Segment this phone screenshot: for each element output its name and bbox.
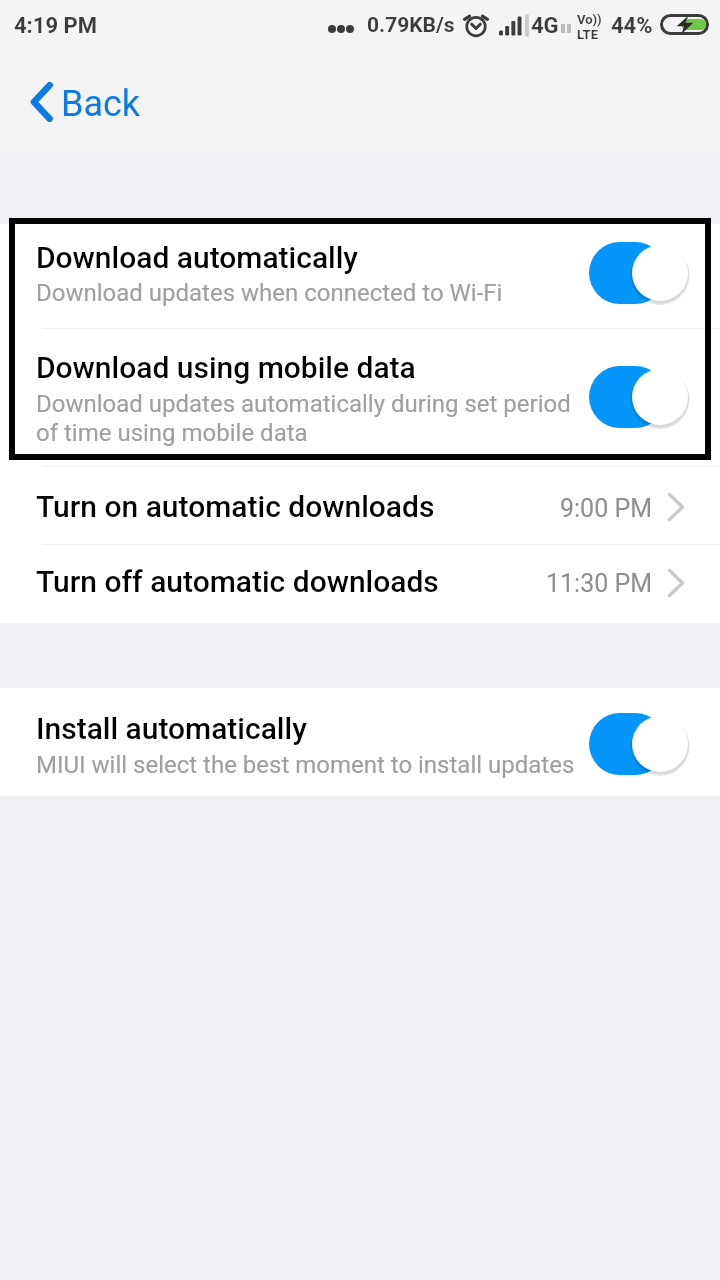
staticText: Download using mobile data	[36, 350, 416, 385]
staticText: Vo))	[577, 12, 602, 27]
staticText: 0.79KB/s	[367, 13, 455, 38]
staticText: 4:19 PM	[14, 13, 97, 39]
staticText: 9:00 PM	[560, 494, 653, 523]
staticText: LTE	[577, 27, 598, 42]
staticText: of time using mobile data	[36, 419, 308, 447]
staticText: Download updates automatically during se…	[36, 390, 571, 418]
other: Back	[28, 81, 55, 123]
staticText: Download updates when connected to Wi-Fi	[36, 279, 503, 307]
staticText: Turn on automatic downloads	[36, 489, 435, 524]
staticText: Back	[61, 83, 141, 125]
staticText: Download automatically	[36, 240, 359, 275]
staticText: 11:30 PM	[546, 569, 653, 598]
button[interactable]: Toggle	[589, 366, 689, 428]
staticText: 44%	[611, 13, 653, 39]
staticText: MIUI will select the best moment to inst…	[36, 751, 575, 779]
button[interactable]: Download using mobile data	[0, 328, 720, 466]
button[interactable]: Download automatically	[0, 224, 720, 328]
button[interactable]: Toggle	[589, 242, 689, 304]
button[interactable]: Turn on automatic downloads	[0, 466, 720, 544]
button[interactable]: Back	[22, 72, 150, 132]
staticText: Turn off automatic downloads	[36, 564, 439, 599]
button[interactable]: Turn off automatic downloads	[0, 544, 720, 623]
staticText: 4G	[531, 13, 559, 39]
button[interactable]: Install automatically	[0, 688, 720, 792]
button[interactable]: Toggle	[589, 713, 689, 775]
staticText: Install automatically	[36, 711, 307, 746]
